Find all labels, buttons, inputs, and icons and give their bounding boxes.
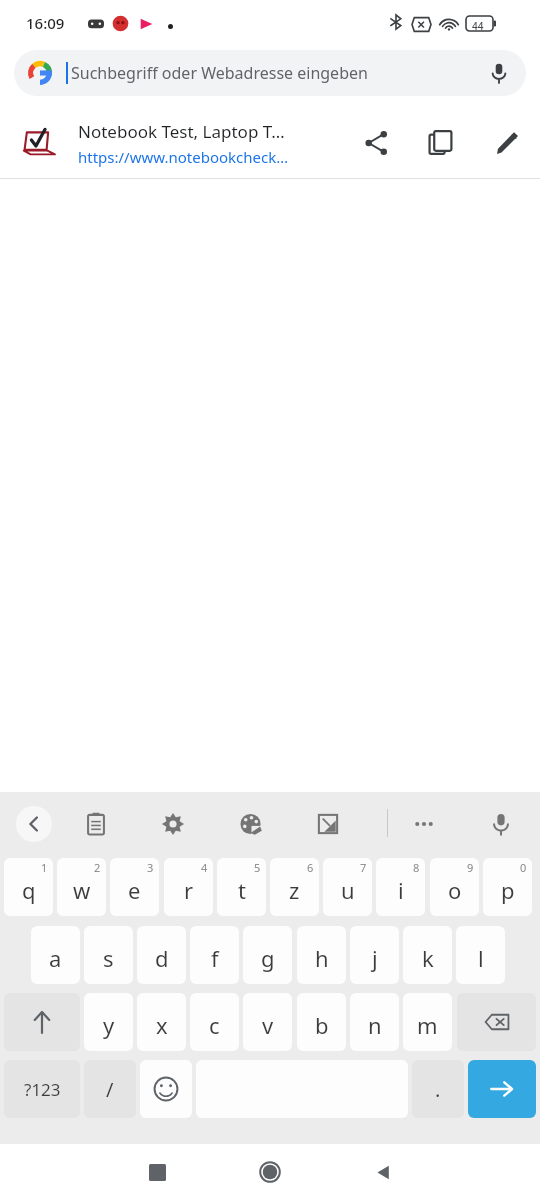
staticText: 3 xyxy=(147,860,154,875)
staticText: y xyxy=(103,1010,115,1040)
button[interactable]: k xyxy=(403,926,452,984)
staticText: j xyxy=(372,943,378,973)
staticText: l xyxy=(478,943,484,973)
button[interactable]: f xyxy=(190,926,239,984)
staticText: o xyxy=(448,875,462,905)
staticText: 5 xyxy=(254,860,261,875)
staticText: 1 xyxy=(41,860,48,875)
button[interactable]: Suchbegriff oder Webadresse eingeben xyxy=(14,50,526,96)
staticText: q xyxy=(22,875,36,905)
button[interactable]: Notebook Test, Laptop T… xyxy=(0,108,540,178)
staticText: u xyxy=(341,875,355,905)
button[interactable]: 1 xyxy=(4,858,53,916)
button[interactable]: ?123 xyxy=(4,1060,80,1118)
staticText: e xyxy=(128,875,141,905)
staticText: i xyxy=(398,875,404,905)
staticText: r xyxy=(184,875,194,905)
button[interactable]: . xyxy=(412,1060,464,1118)
button[interactable]: s xyxy=(84,926,133,984)
staticText: v xyxy=(262,1010,274,1040)
staticText: d xyxy=(155,943,169,973)
staticText: a xyxy=(49,943,62,973)
staticText: 9 xyxy=(467,860,474,875)
staticText: p xyxy=(501,875,515,905)
button[interactable]: g xyxy=(243,926,292,984)
staticText: w xyxy=(73,875,91,905)
button[interactable]: Recent apps xyxy=(128,1152,186,1192)
button[interactable]: a xyxy=(31,926,80,984)
button[interactable]: Shift xyxy=(4,993,80,1051)
button[interactable]: Voice search xyxy=(486,60,512,86)
staticText: 44 xyxy=(472,19,484,33)
button[interactable]: Clipboard xyxy=(77,805,115,843)
button[interactable]: 0 xyxy=(483,858,532,916)
button[interactable]: Home xyxy=(241,1152,299,1192)
staticText: x xyxy=(156,1010,168,1040)
button[interactable]: c xyxy=(190,993,239,1051)
button[interactable]: 6 xyxy=(270,858,319,916)
button[interactable]: Resize xyxy=(309,805,347,843)
staticText: n xyxy=(368,1010,382,1040)
staticText: ?123 xyxy=(24,1078,61,1101)
button[interactable]: h xyxy=(297,926,346,984)
staticText: b xyxy=(315,1010,329,1040)
button[interactable]: 2 xyxy=(57,858,106,916)
staticText: 6 xyxy=(307,860,314,875)
button[interactable]: Copy xyxy=(408,108,474,178)
button[interactable]: Backspace xyxy=(457,993,536,1051)
button[interactable]: 3 xyxy=(110,858,159,916)
button[interactable]: l xyxy=(456,926,505,984)
staticText: m xyxy=(417,1010,438,1040)
button[interactable]: Theme xyxy=(232,805,270,843)
staticText: 8 xyxy=(413,860,420,875)
staticText: 7 xyxy=(360,860,367,875)
button[interactable]: Voice input xyxy=(482,805,520,843)
button[interactable]: More options xyxy=(405,805,443,843)
button[interactable]: 8 xyxy=(376,858,425,916)
button[interactable]: Share xyxy=(346,108,408,178)
staticText: Notebook Test, Laptop T… xyxy=(78,120,285,143)
staticText: c xyxy=(209,1010,220,1040)
button[interactable]: y xyxy=(84,993,133,1051)
button[interactable]: m xyxy=(403,993,452,1051)
staticText: . xyxy=(435,1076,441,1103)
button[interactable]: 7 xyxy=(323,858,372,916)
staticText: / xyxy=(106,1076,114,1103)
staticText: g xyxy=(261,943,275,973)
button[interactable]: / xyxy=(84,1060,136,1118)
staticText: 0 xyxy=(520,860,527,875)
staticText: Suchbegriff oder Webadresse eingeben xyxy=(71,62,368,84)
button[interactable]: Emoji xyxy=(140,1060,192,1118)
button[interactable]: d xyxy=(137,926,186,984)
button[interactable]: Enter xyxy=(468,1060,536,1118)
staticText: f xyxy=(211,943,219,973)
button[interactable]: x xyxy=(137,993,186,1051)
button[interactable]: Back xyxy=(16,806,52,842)
staticText: 2 xyxy=(94,860,101,875)
staticText: 16:09 xyxy=(26,13,65,33)
button[interactable]: 9 xyxy=(430,858,479,916)
button[interactable]: 5 xyxy=(217,858,266,916)
button[interactable]: b xyxy=(297,993,346,1051)
staticText: https://www.notebookcheck… xyxy=(78,147,289,167)
staticText: s xyxy=(103,943,114,973)
staticText: 4 xyxy=(201,860,208,875)
button[interactable]: j xyxy=(350,926,399,984)
staticText: h xyxy=(315,943,329,973)
staticText: z xyxy=(289,875,300,905)
button[interactable]: Edit xyxy=(474,108,540,178)
button[interactable]: Back xyxy=(354,1152,412,1192)
staticText: t xyxy=(238,875,246,905)
button[interactable]: 4 xyxy=(164,858,213,916)
button[interactable]: Settings xyxy=(154,805,192,843)
staticText: k xyxy=(422,943,434,973)
button[interactable]: v xyxy=(243,993,292,1051)
button[interactable]: n xyxy=(350,993,399,1051)
